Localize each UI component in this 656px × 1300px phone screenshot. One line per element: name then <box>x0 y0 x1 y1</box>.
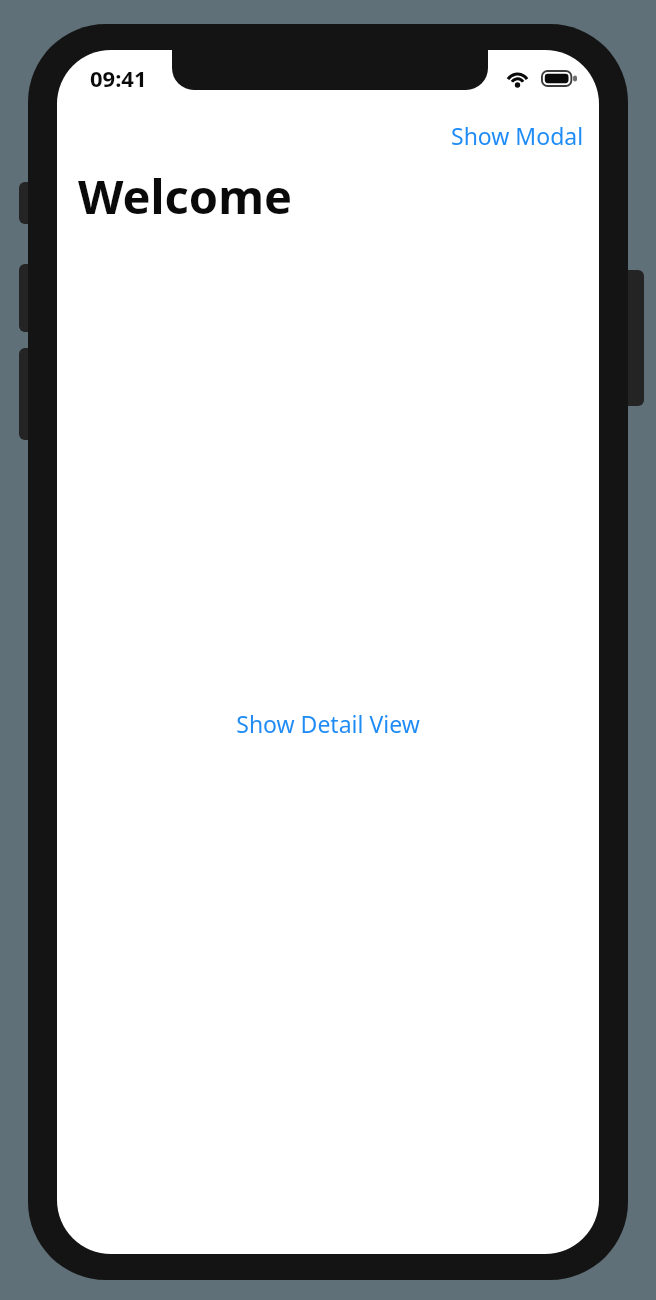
staticText: 09:41 <box>90 63 147 93</box>
other: Battery <box>541 70 577 87</box>
other: Wi-Fi <box>505 69 530 87</box>
staticText: Show Modal <box>451 120 584 151</box>
staticText: Welcome <box>78 164 293 228</box>
button[interactable]: Show Modal <box>436 113 599 158</box>
staticText: Show Detail View <box>236 708 420 739</box>
button[interactable]: Show Detail View <box>222 700 434 747</box>
